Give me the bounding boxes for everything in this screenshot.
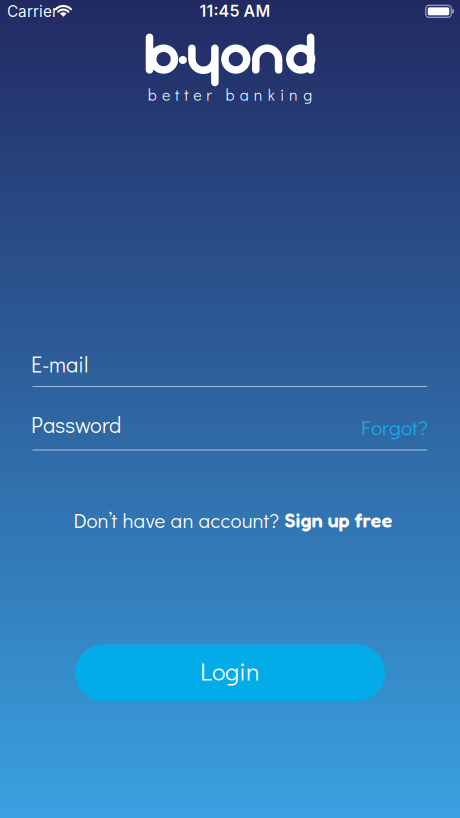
staticText: 11:45 AM xyxy=(199,1,270,21)
staticText: Login xyxy=(200,654,260,687)
button[interactable]: Sign up free xyxy=(284,508,392,532)
staticText: Password xyxy=(31,410,121,439)
staticText: Don’t have an account? xyxy=(73,506,279,534)
button[interactable]: Forgot? xyxy=(361,410,428,438)
staticText: Forgot? xyxy=(361,413,428,441)
staticText: Sign up free xyxy=(284,508,392,532)
staticText: better banking xyxy=(148,84,312,105)
staticText: E-mail xyxy=(31,350,88,378)
staticText: Carrier xyxy=(7,2,58,21)
button[interactable]: Login xyxy=(75,644,385,701)
